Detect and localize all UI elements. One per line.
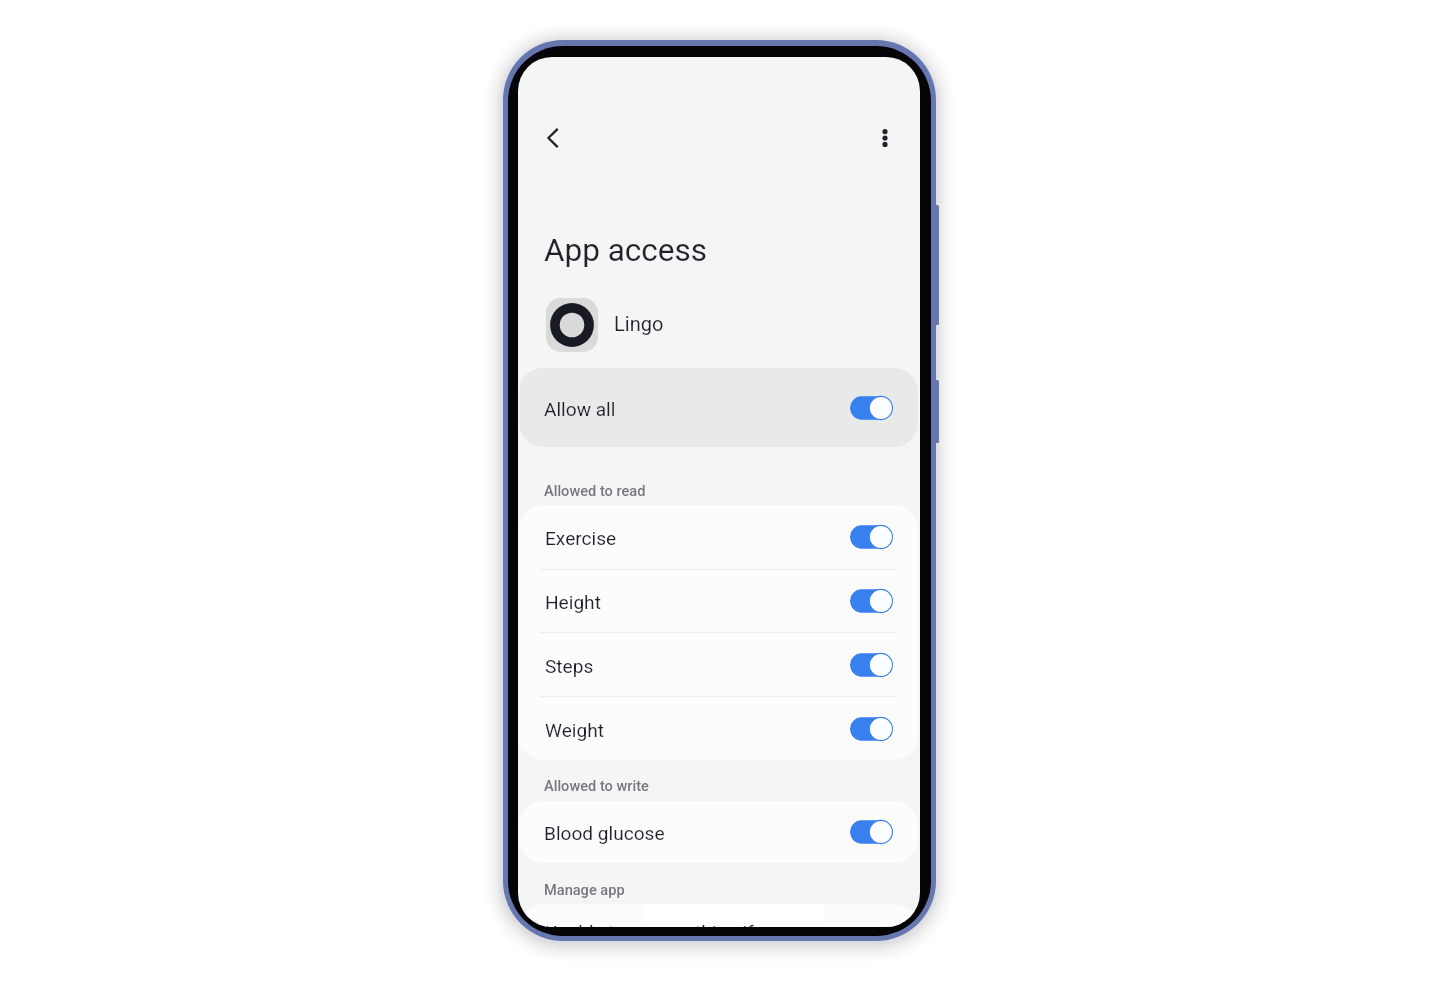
staticText: Manage app <box>544 881 625 898</box>
staticText: Blood glucose <box>544 822 665 844</box>
staticText: Allow all <box>544 398 616 420</box>
staticText: Lingo <box>614 312 664 335</box>
staticText: Exercise <box>545 527 617 549</box>
staticText: Unable to see anything if your <box>545 921 796 927</box>
button[interactable]: Height <box>519 569 918 633</box>
staticText: App access <box>544 232 708 269</box>
staticText: Steps <box>545 655 594 677</box>
button[interactable]: More options <box>861 114 909 162</box>
button[interactable]: Blood glucose <box>519 801 918 863</box>
staticText: Height <box>545 591 601 613</box>
button[interactable]: Weight toggle, on <box>850 716 894 742</box>
button[interactable]: Height toggle, on <box>850 588 894 614</box>
staticText: Allowed to write <box>544 777 649 794</box>
button[interactable] <box>519 904 918 927</box>
button[interactable]: Exercise toggle, on <box>850 524 894 550</box>
button[interactable]: Exercise <box>519 505 918 569</box>
button[interactable]: Steps <box>519 633 918 697</box>
button[interactable]: Allow all toggle, on <box>850 395 894 421</box>
button[interactable]: Back <box>529 114 577 162</box>
staticText: Allowed to read <box>544 482 646 499</box>
button[interactable]: Steps toggle, on <box>850 652 894 678</box>
button[interactable]: Blood glucose toggle, on <box>850 819 894 845</box>
button[interactable]: Weight <box>519 697 918 761</box>
staticText: Weight <box>545 719 604 741</box>
